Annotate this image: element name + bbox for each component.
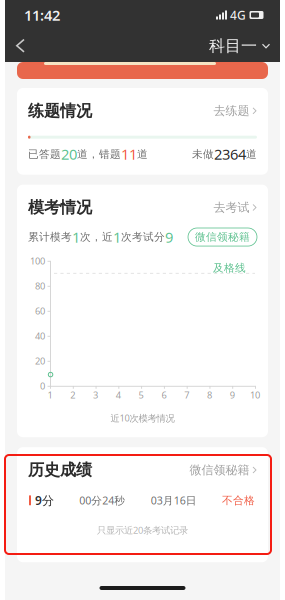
staticText: 9: [165, 227, 173, 247]
staticText: 0: [40, 380, 45, 392]
staticText: 去考试: [213, 200, 249, 215]
staticText: 历史成绩: [28, 460, 92, 480]
staticText: 累计模考: [28, 230, 72, 244]
staticText: 60: [35, 305, 45, 317]
staticText: 100: [30, 255, 45, 267]
staticText: 11: [121, 144, 137, 164]
staticText: 及格线: [213, 261, 246, 274]
staticText: 近10次模考情况: [110, 412, 174, 424]
staticText: 40: [35, 330, 45, 342]
staticText: 次，近: [80, 230, 113, 244]
staticText: 2364: [214, 144, 246, 164]
staticText: 5: [139, 389, 144, 401]
staticText: 微信领秘籍: [189, 463, 249, 477]
button[interactable]: 微信领秘籍: [189, 463, 257, 477]
staticText: 11:42: [24, 5, 60, 25]
staticText: 6: [161, 389, 166, 401]
staticText: 微信领秘籍: [195, 230, 250, 244]
staticText: 80: [35, 280, 45, 292]
staticText: 1: [72, 227, 80, 247]
staticText: 20: [35, 355, 45, 367]
staticText: 00分24秒: [79, 493, 125, 507]
staticText: 9分: [35, 492, 54, 508]
staticText: 道: [246, 148, 257, 161]
button[interactable]: 微信领秘籍: [188, 228, 257, 246]
staticText: 1: [113, 227, 121, 247]
staticText: 已答题: [28, 148, 61, 161]
staticText: 未做: [192, 148, 214, 161]
staticText: 3: [93, 389, 98, 401]
staticText: 道，错题: [77, 148, 121, 161]
staticText: 10: [250, 389, 260, 401]
staticText: 4G: [230, 7, 246, 23]
staticText: 只显示近20条考试记录: [97, 524, 188, 536]
staticText: 2: [70, 389, 75, 401]
staticText: 科目一: [209, 36, 257, 56]
staticText: 道: [137, 148, 148, 161]
staticText: 8: [207, 389, 212, 401]
staticText: 模考情况: [28, 198, 92, 217]
staticText: 20: [61, 144, 77, 164]
staticText: 4: [116, 389, 121, 401]
staticText: 1: [47, 389, 52, 401]
staticText: 次考试分: [121, 230, 165, 244]
staticText: 练题情况: [28, 101, 92, 121]
staticText: 9: [230, 389, 235, 401]
button[interactable]: Back: [5, 30, 39, 62]
staticText: 去练题: [213, 103, 249, 118]
button[interactable]: 9分: [17, 480, 268, 507]
button[interactable]: 去练题: [213, 103, 257, 118]
button[interactable]: 去考试: [213, 200, 257, 215]
staticText: 7: [184, 389, 189, 401]
staticText: 03月16日: [151, 493, 197, 507]
staticText: 不合格: [222, 494, 255, 507]
button[interactable]: 科目一: [199, 30, 280, 62]
